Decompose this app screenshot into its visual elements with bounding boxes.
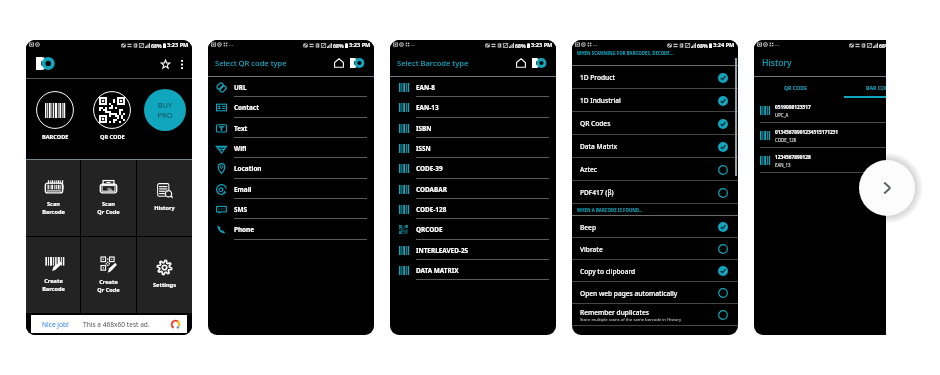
button[interactable]: BARCODE xyxy=(30,79,80,141)
staticText: 68% xyxy=(333,42,344,49)
staticText: 3:23 PM xyxy=(349,41,371,49)
staticText: EAN-8 xyxy=(416,83,435,92)
button[interactable]: CODABAR xyxy=(390,179,556,199)
button[interactable]: Open web pages automatically xyxy=(572,282,738,304)
staticText: Phone xyxy=(234,225,255,234)
staticText: INTERLEAVED-25 xyxy=(416,246,469,255)
staticText: SMS xyxy=(234,205,248,214)
button[interactable]: PDF417 (β) xyxy=(572,181,738,204)
staticText: QRCODE xyxy=(416,225,443,234)
staticText: ... xyxy=(229,41,234,48)
staticText: Copy to clipboard xyxy=(580,267,636,276)
staticText: BAR CODE xyxy=(866,84,886,91)
button[interactable]: Scan Barcode xyxy=(26,160,80,236)
button[interactable]: Wifi xyxy=(208,138,374,158)
staticText: ISSN xyxy=(416,144,431,153)
staticText: 68% xyxy=(697,42,708,49)
staticText: Data Matrix xyxy=(580,142,618,151)
button[interactable]: QR CODE xyxy=(754,77,837,98)
button[interactable]: Home xyxy=(513,55,528,70)
button[interactable]: QR Codes xyxy=(572,112,738,135)
button[interactable]: Vibrate xyxy=(572,238,738,260)
button[interactable]: More options xyxy=(176,58,188,70)
staticText: 3:23 PM xyxy=(167,41,189,49)
staticText: CODE_128 xyxy=(775,137,797,143)
staticText: 0519008123517 xyxy=(775,104,811,111)
staticText: Text xyxy=(234,124,248,133)
staticText: WHEN SCANNING FOR BARCODES, DECODE... xyxy=(577,50,674,56)
button[interactable]: Text xyxy=(208,118,374,138)
button[interactable]: Create Qr Code xyxy=(81,237,136,313)
button[interactable]: Data Matrix xyxy=(572,135,738,158)
staticText: DATA MATRIX xyxy=(416,266,459,275)
button[interactable]: Email xyxy=(208,179,374,199)
button[interactable]: Beep xyxy=(572,216,738,238)
button[interactable]: URL xyxy=(208,77,374,97)
button[interactable]: SMS xyxy=(208,199,374,219)
button[interactable]: Aztec xyxy=(572,158,738,181)
button[interactable]: INTERLEAVED-25 xyxy=(390,240,556,260)
staticText: Vibrate xyxy=(580,245,603,254)
staticText: ... xyxy=(411,41,416,48)
staticText: ... xyxy=(775,41,780,48)
button[interactable]: Favorite xyxy=(157,56,173,72)
button[interactable]: 0519008123517 xyxy=(754,98,886,123)
staticText: 1234567890128 xyxy=(775,154,811,161)
button[interactable]: Next xyxy=(859,160,915,216)
staticText: EAN_13 xyxy=(775,162,791,168)
button[interactable]: App logo xyxy=(532,58,550,68)
button[interactable]: Scan Qr Code xyxy=(81,160,136,236)
button[interactable]: 1D Industrial xyxy=(572,89,738,112)
button[interactable]: 01345678901234515171231 xyxy=(754,123,886,148)
button[interactable]: History xyxy=(137,160,192,236)
staticText: EAN-13 xyxy=(416,103,439,112)
button[interactable]: EAN-8 xyxy=(390,77,556,97)
button[interactable]: Settings xyxy=(137,237,192,313)
button[interactable]: CODE-39 xyxy=(390,158,556,179)
staticText: Settings xyxy=(153,281,176,289)
button[interactable]: Contact xyxy=(208,97,374,118)
staticText: 3:23 PM xyxy=(531,41,553,49)
button[interactable]: Remember duplicates xyxy=(572,304,738,326)
staticText: QR CODE xyxy=(100,133,125,141)
staticText: 68% xyxy=(515,42,526,49)
button[interactable]: BAR CODE xyxy=(837,77,886,98)
button[interactable]: Home xyxy=(331,55,346,70)
staticText: WHEN A BARCODE IS FOUND... xyxy=(577,207,643,213)
staticText: 1D Industrial xyxy=(580,96,621,105)
staticText: QR Codes xyxy=(580,119,611,128)
button[interactable]: QR CODE xyxy=(87,79,137,141)
staticText: Select QR code type xyxy=(215,58,287,68)
button[interactable]: DATA MATRIX xyxy=(390,260,556,280)
button[interactable]: EAN-13 xyxy=(390,97,556,118)
button[interactable]: Phone xyxy=(208,219,374,240)
button[interactable]: Copy to clipboard xyxy=(572,260,738,282)
staticText: 68% xyxy=(151,42,162,49)
staticText: ISBN xyxy=(416,124,432,133)
button[interactable]: ISBN xyxy=(390,118,556,138)
staticText: Select Barcode type xyxy=(397,58,469,68)
button[interactable]: CODE-128 xyxy=(390,199,556,219)
staticText: Beep xyxy=(580,223,596,232)
staticText: CODABAR xyxy=(416,185,447,194)
button[interactable]: App logo xyxy=(350,58,368,68)
staticText: Wifi xyxy=(234,144,247,153)
button[interactable]: Nice job! xyxy=(31,315,187,333)
staticText: History xyxy=(762,57,792,69)
staticText: PDF417 (β) xyxy=(580,188,614,197)
button[interactable]: 1234567890128 xyxy=(754,148,886,173)
staticText: Store multiple scans of the same barcode… xyxy=(580,317,682,323)
staticText: Remember duplicates xyxy=(580,308,649,317)
button[interactable]: Location xyxy=(208,158,374,179)
button[interactable]: QRCODE xyxy=(390,219,556,240)
button[interactable]: BUY PRO xyxy=(144,89,186,131)
staticText: Create Barcode xyxy=(42,277,65,292)
staticText: Open web pages automatically xyxy=(580,289,678,298)
staticText: 1D Product xyxy=(580,73,615,82)
button[interactable]: ISSN xyxy=(390,138,556,158)
staticText: Nice job! xyxy=(42,320,69,329)
button[interactable]: 1D Product xyxy=(572,66,738,89)
staticText: Contact xyxy=(234,103,259,112)
button[interactable]: Logo xyxy=(36,57,59,70)
button[interactable]: Create Barcode xyxy=(26,237,80,313)
